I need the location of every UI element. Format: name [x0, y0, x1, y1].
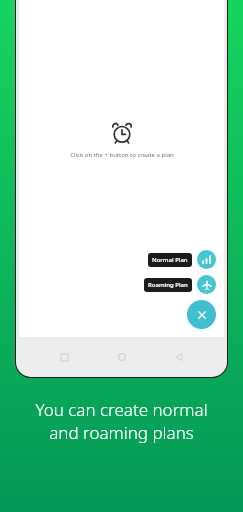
button[interactable]: Roaming Plan [144, 275, 216, 294]
button[interactable]: Close menu [187, 300, 216, 329]
button[interactable]: Recent apps [51, 344, 77, 370]
staticText: Roaming Plan [148, 281, 188, 289]
staticText: You can create normal and roaming plans [35, 398, 208, 444]
button[interactable]: Back [166, 344, 192, 370]
staticText: Click on the + button to create a plan [70, 151, 174, 159]
button[interactable]: Home [109, 344, 135, 370]
staticText: Normal Plan [152, 256, 188, 264]
button[interactable]: Normal Plan [148, 250, 216, 269]
